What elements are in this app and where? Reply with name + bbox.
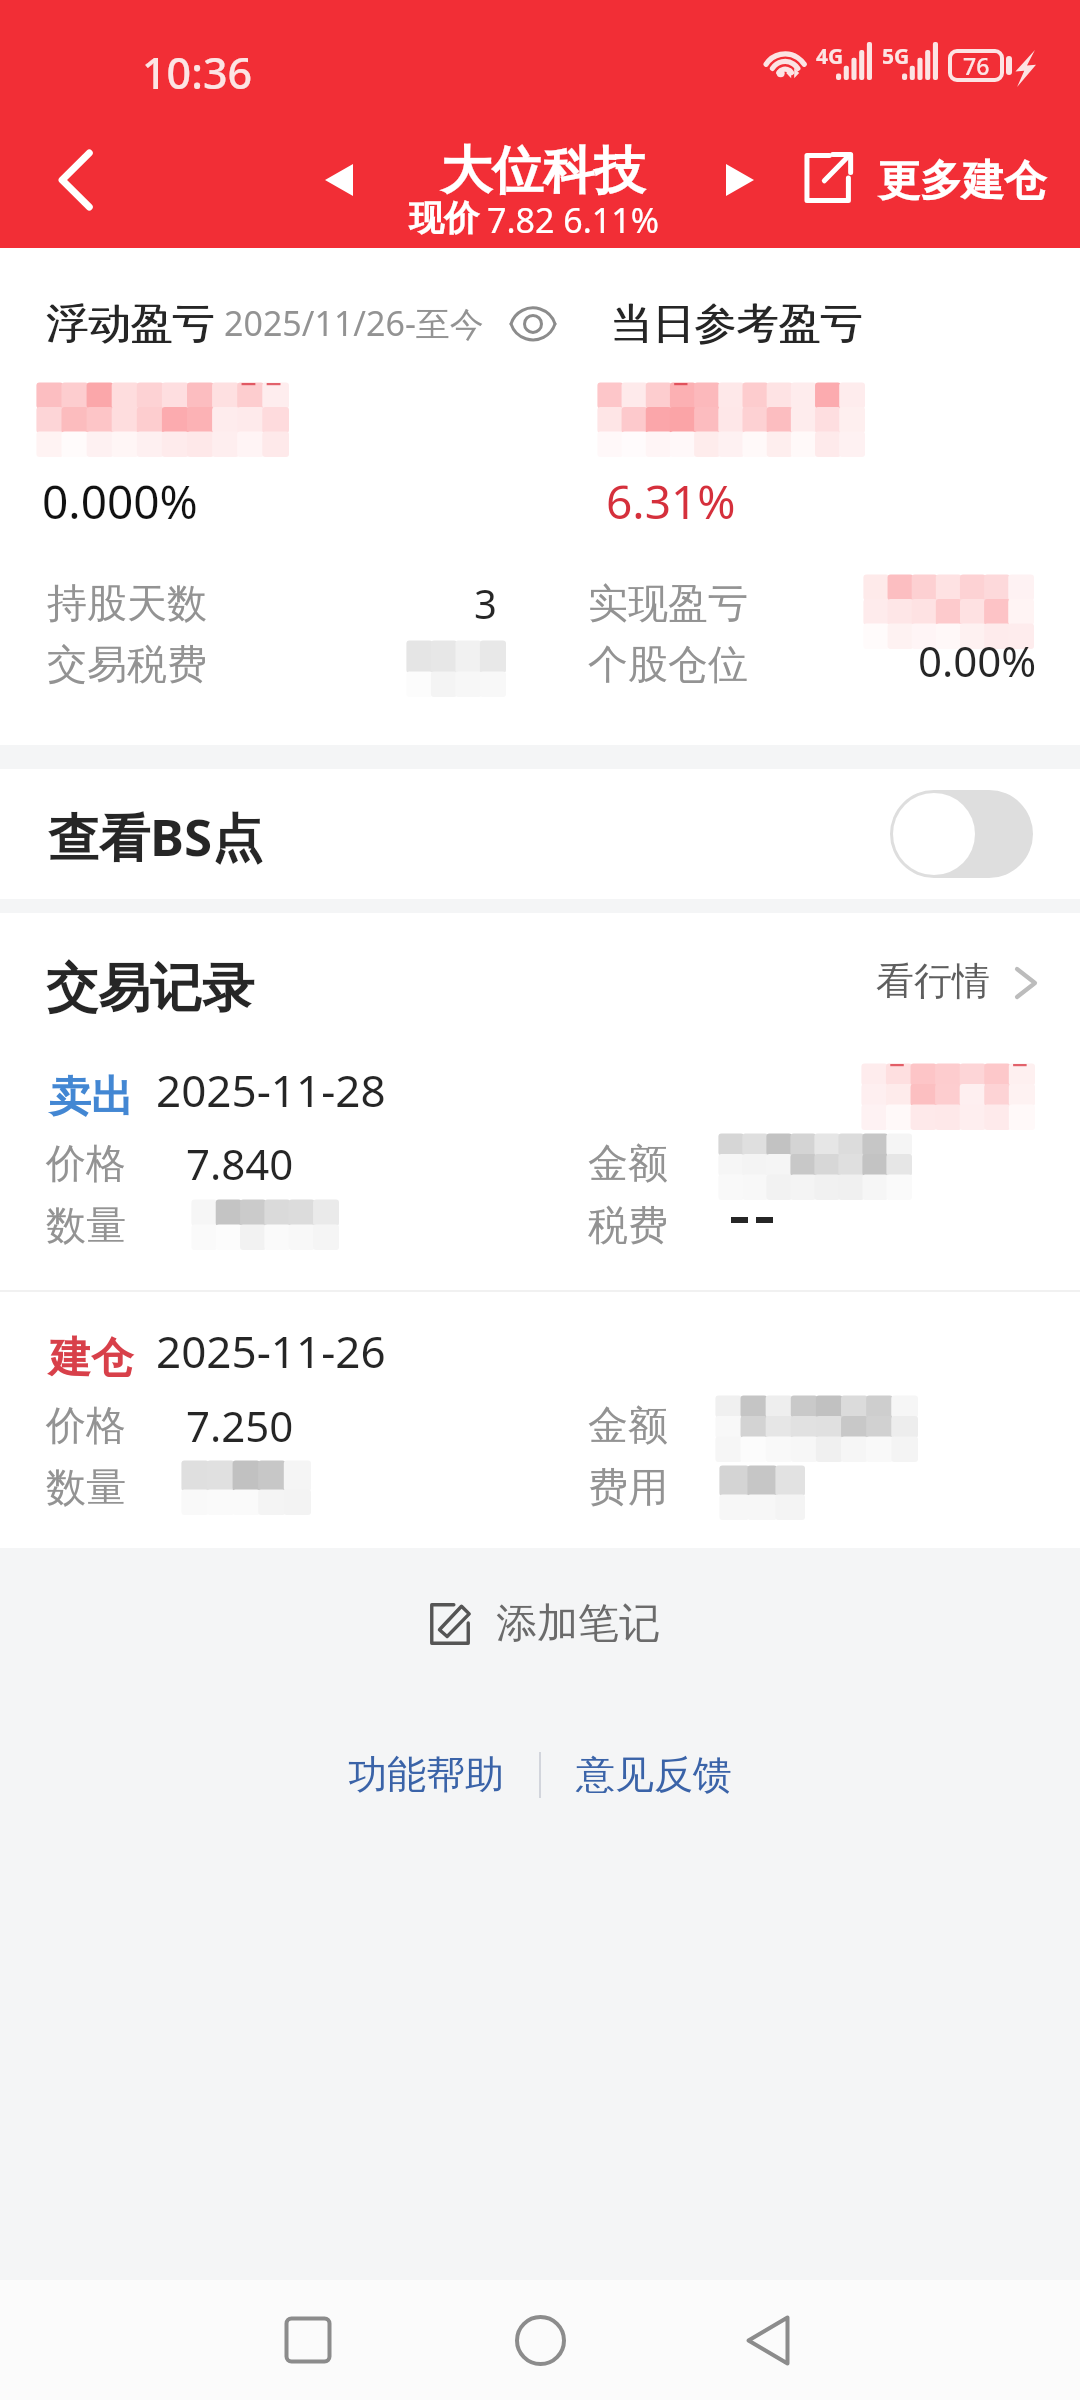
staticText: 数量 bbox=[46, 1462, 126, 1512]
button[interactable]: 添加笔记 bbox=[426, 1598, 660, 1650]
staticText: 0.00% bbox=[918, 632, 1037, 689]
staticText: 卖出 bbox=[49, 1071, 133, 1124]
button[interactable]: Recents bbox=[248, 2280, 368, 2400]
staticText: 2025/11/26-至今 bbox=[224, 300, 484, 346]
staticText: 实现盈亏 bbox=[588, 578, 748, 628]
button[interactable]: Back bbox=[10, 112, 140, 248]
staticText: 2025-11-26 bbox=[156, 1321, 386, 1381]
staticText: 个股仓位 bbox=[588, 639, 748, 689]
button[interactable] bbox=[0, 1292, 1080, 1548]
button[interactable] bbox=[0, 1018, 1080, 1290]
staticText: 功能帮助 bbox=[348, 1750, 504, 1799]
staticText: 7.250 bbox=[186, 1397, 294, 1454]
staticText: 当日参考盈亏 bbox=[611, 298, 863, 351]
staticText: 查看BS点 bbox=[48, 801, 264, 871]
staticText: 6.31% bbox=[606, 470, 736, 533]
button[interactable]: Share bbox=[790, 142, 862, 214]
staticText: 5G bbox=[882, 42, 910, 71]
staticText: 浮动盈亏 bbox=[47, 298, 215, 351]
staticText: 税费 bbox=[588, 1200, 668, 1250]
staticText: 76 bbox=[963, 50, 990, 81]
button[interactable]: Previous stock bbox=[296, 112, 382, 248]
button[interactable]: Home bbox=[480, 2280, 600, 2400]
button[interactable]: 意见反馈 bbox=[568, 1744, 740, 1805]
staticText: 0.000% bbox=[42, 470, 198, 533]
staticText: 交易记录 bbox=[46, 956, 254, 1022]
button[interactable]: Back bbox=[708, 2280, 828, 2400]
staticText: 2025-11-28 bbox=[156, 1060, 386, 1120]
button[interactable]: 看行情 bbox=[876, 957, 1037, 1005]
staticText: 意见反馈 bbox=[576, 1750, 732, 1799]
staticText: 7.840 bbox=[186, 1135, 294, 1192]
staticText: 持股天数 bbox=[47, 578, 207, 628]
staticText: 建仓 bbox=[49, 1332, 133, 1385]
button[interactable]: 功能帮助 bbox=[340, 1744, 512, 1805]
staticText: 10:36 bbox=[142, 43, 253, 102]
button[interactable]: 更多建仓 bbox=[878, 155, 1046, 208]
staticText: 3 bbox=[474, 576, 497, 630]
staticText: 价格 bbox=[46, 1400, 126, 1450]
staticText: 添加笔记 bbox=[496, 1598, 660, 1650]
staticText: 4G bbox=[816, 42, 844, 71]
staticText: 当日参考盈亏 bbox=[610, 298, 862, 351]
staticText: 浮动盈亏 bbox=[46, 298, 214, 351]
staticText: 大位科技 bbox=[441, 139, 645, 203]
staticText: 数量 bbox=[46, 1200, 126, 1250]
button[interactable]: 查看BS点 bbox=[0, 769, 1080, 899]
staticText: 费用 bbox=[588, 1462, 668, 1512]
button[interactable]: Next stock bbox=[700, 112, 780, 248]
button[interactable]: Toggle visibility bbox=[505, 301, 561, 345]
staticText: 7.82 6.11% bbox=[487, 197, 660, 243]
staticText: 看行情 bbox=[876, 957, 990, 1005]
staticText: 更多建仓 bbox=[878, 155, 1046, 208]
staticText: 价格 bbox=[46, 1138, 126, 1188]
staticText: 金额 bbox=[588, 1138, 668, 1188]
staticText: 金额 bbox=[588, 1400, 668, 1450]
staticText: 现价 bbox=[409, 196, 479, 240]
staticText: 交易税费 bbox=[47, 639, 207, 689]
